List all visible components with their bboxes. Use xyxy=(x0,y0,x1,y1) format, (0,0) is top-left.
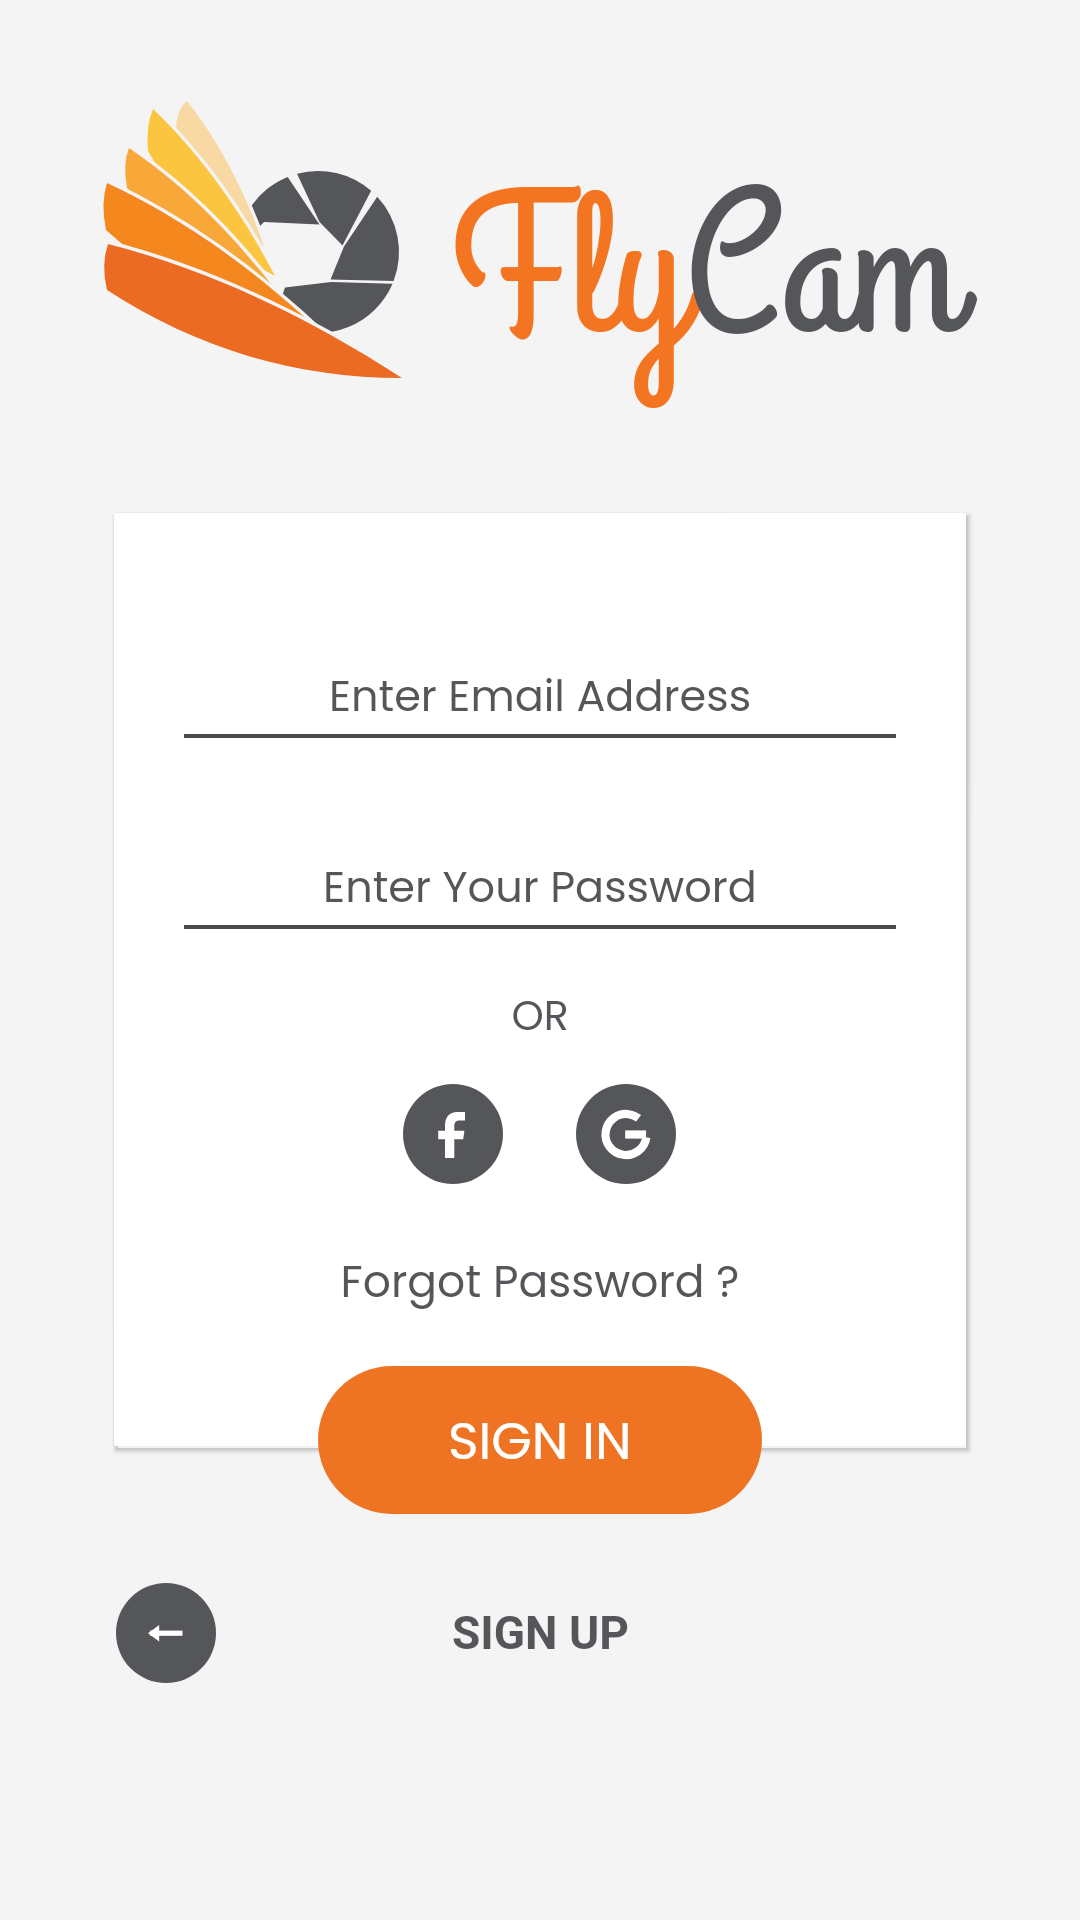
staticText: SIGN UP xyxy=(452,1606,629,1660)
staticText: FlyCam xyxy=(452,139,960,408)
button[interactable]: Back xyxy=(116,1583,216,1683)
staticText: Enter Your Password xyxy=(184,857,896,917)
button[interactable]: SIGN IN xyxy=(318,1366,762,1514)
staticText: SIGN IN xyxy=(448,1404,632,1477)
staticText: Enter Email Address xyxy=(184,666,896,726)
button[interactable]: Forgot Password ? xyxy=(184,1251,896,1313)
button[interactable]: SIGN UP xyxy=(400,1583,680,1683)
button[interactable]: Sign in with Google xyxy=(576,1084,676,1184)
staticText: OR xyxy=(184,987,896,1044)
button[interactable]: Sign in with Facebook xyxy=(403,1084,503,1184)
